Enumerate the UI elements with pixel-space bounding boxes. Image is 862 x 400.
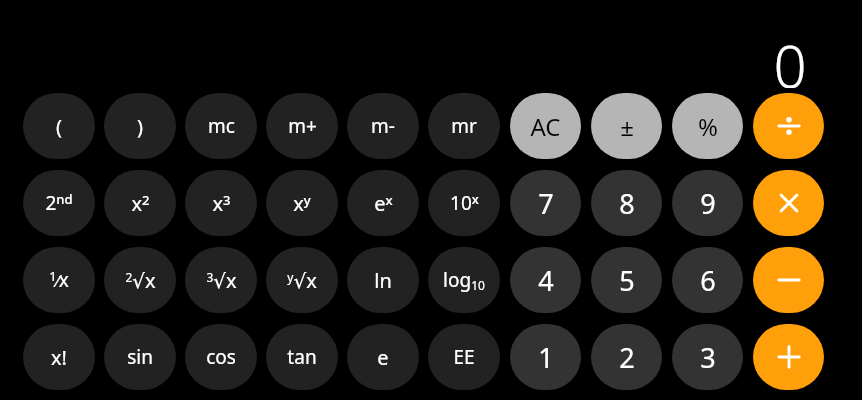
- button[interactable]: Add: [753, 324, 824, 390]
- staticText: (: [56, 113, 62, 140]
- staticText: 1⁄x: [49, 267, 69, 293]
- staticText: 7: [538, 185, 554, 222]
- button[interactable]: x2: [104, 170, 176, 236]
- staticText: m-: [371, 113, 395, 139]
- staticText: x2: [131, 190, 150, 217]
- button[interactable]: 6: [672, 247, 743, 313]
- button[interactable]: e: [347, 324, 419, 390]
- button[interactable]: log10: [428, 247, 500, 313]
- staticText: 0: [773, 26, 807, 88]
- staticText: mc: [208, 113, 235, 139]
- staticText: 6: [700, 262, 716, 299]
- staticText: ln: [374, 267, 392, 294]
- button[interactable]: m+: [266, 93, 338, 159]
- staticText: 2√x: [125, 267, 156, 294]
- button[interactable]: ln: [347, 247, 419, 313]
- button[interactable]: mr: [428, 93, 500, 159]
- staticText: %: [698, 110, 718, 143]
- staticText: mr: [451, 113, 477, 139]
- button[interactable]: ex: [347, 170, 419, 236]
- button[interactable]: 9: [672, 170, 743, 236]
- staticText: xy: [293, 190, 311, 217]
- button[interactable]: 2nd: [23, 170, 95, 236]
- button[interactable]: %: [672, 93, 743, 159]
- button[interactable]: xy: [266, 170, 338, 236]
- button[interactable]: (: [23, 93, 95, 159]
- staticText: e: [377, 344, 389, 371]
- staticText: EE: [453, 344, 475, 370]
- button[interactable]: tan: [266, 324, 338, 390]
- staticText: 3√x: [206, 267, 237, 294]
- staticText: AC: [530, 110, 561, 143]
- staticText: 10x: [450, 190, 479, 216]
- button[interactable]: EE: [428, 324, 500, 390]
- button[interactable]: 7: [510, 170, 581, 236]
- button[interactable]: ±: [591, 93, 662, 159]
- staticText: tan: [287, 344, 317, 370]
- button[interactable]: sin: [104, 324, 176, 390]
- staticText: log10: [443, 267, 485, 293]
- button[interactable]: 3√x: [185, 247, 257, 313]
- button[interactable]: Divide: [753, 93, 824, 159]
- staticText: cos: [206, 344, 236, 370]
- button[interactable]: 3: [672, 324, 743, 390]
- button[interactable]: x!: [23, 324, 95, 390]
- button[interactable]: x3: [185, 170, 257, 236]
- staticText: 8: [619, 185, 635, 222]
- button[interactable]: ): [104, 93, 176, 159]
- staticText: ±: [620, 110, 634, 143]
- staticText: ex: [374, 190, 393, 217]
- button[interactable]: Subtract: [753, 247, 824, 313]
- staticText: 4: [538, 262, 554, 299]
- button[interactable]: AC: [510, 93, 581, 159]
- button[interactable]: m-: [347, 93, 419, 159]
- button[interactable]: 2√x: [104, 247, 176, 313]
- button[interactable]: 1⁄x: [23, 247, 95, 313]
- staticText: x!: [51, 344, 67, 371]
- button[interactable]: y√x: [266, 247, 338, 313]
- staticText: 3: [700, 339, 716, 376]
- button[interactable]: 4: [510, 247, 581, 313]
- button[interactable]: 5: [591, 247, 662, 313]
- button[interactable]: mc: [185, 93, 257, 159]
- staticText: 5: [619, 262, 635, 299]
- staticText: 2nd: [45, 190, 73, 216]
- staticText: 2: [619, 339, 635, 376]
- staticText: 9: [700, 185, 716, 222]
- staticText: m+: [288, 113, 317, 139]
- button[interactable]: cos: [185, 324, 257, 390]
- staticText: ): [137, 113, 143, 140]
- staticText: x3: [212, 190, 231, 217]
- staticText: y√x: [287, 267, 317, 294]
- staticText: 1: [538, 339, 554, 376]
- button[interactable]: 8: [591, 170, 662, 236]
- staticText: sin: [127, 344, 153, 370]
- button[interactable]: 10x: [428, 170, 500, 236]
- button[interactable]: Multiply: [753, 170, 824, 236]
- button[interactable]: 2: [591, 324, 662, 390]
- button[interactable]: 1: [510, 324, 581, 390]
